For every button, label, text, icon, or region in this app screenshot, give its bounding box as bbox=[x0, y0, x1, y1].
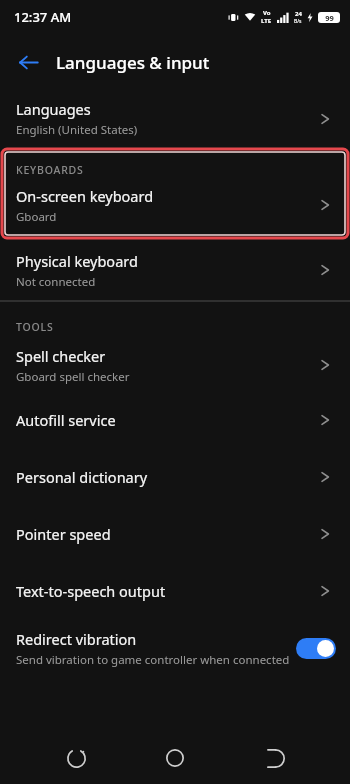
button[interactable]: Autofill service bbox=[0, 392, 350, 448]
staticText: Languages & input bbox=[56, 51, 210, 74]
staticText: Gboard bbox=[16, 209, 57, 225]
button[interactable]: Recent apps bbox=[52, 734, 100, 782]
staticText: B/s bbox=[294, 18, 302, 25]
button[interactable]: Redirect vibration bbox=[0, 619, 350, 677]
staticText: 12:37 AM bbox=[14, 8, 72, 26]
button[interactable]: Home bbox=[151, 734, 199, 782]
staticText: Text-to-speech output bbox=[16, 581, 166, 601]
button[interactable]: Text-to-speech output bbox=[0, 562, 350, 619]
staticText: Redirect vibration bbox=[16, 629, 137, 649]
button[interactable]: Languages bbox=[0, 90, 350, 147]
button[interactable]: Back bbox=[8, 42, 48, 82]
staticText: TOOLS bbox=[16, 320, 350, 334]
staticText: Personal dictionary bbox=[16, 467, 148, 487]
button[interactable]: On-screen keyboard bbox=[0, 177, 350, 233]
staticText: Pointer speed bbox=[16, 524, 111, 544]
button[interactable]: Spell checker bbox=[0, 338, 350, 392]
staticText: English (United States) bbox=[16, 122, 138, 138]
button[interactable]: Back bbox=[251, 734, 299, 782]
staticText: Physical keyboard bbox=[16, 251, 138, 271]
staticText: LTE bbox=[261, 17, 272, 25]
staticText: Languages bbox=[16, 99, 91, 119]
button[interactable]: Personal dictionary bbox=[0, 448, 350, 505]
staticText: Send vibration to game controller when c… bbox=[16, 652, 290, 668]
staticText: 24 bbox=[295, 10, 302, 18]
staticText: Autofill service bbox=[16, 410, 116, 430]
staticText: Not connected bbox=[16, 274, 96, 290]
staticText: KEYBOARDS bbox=[16, 163, 350, 177]
staticText: 99 bbox=[325, 13, 334, 23]
staticText: Gboard spell checker bbox=[16, 369, 130, 385]
staticText: Spell checker bbox=[16, 346, 106, 366]
button[interactable]: Physical keyboard bbox=[0, 240, 350, 300]
staticText: Vo bbox=[263, 9, 271, 17]
staticText: On-screen keyboard bbox=[16, 186, 154, 206]
button[interactable]: Pointer speed bbox=[0, 505, 350, 562]
